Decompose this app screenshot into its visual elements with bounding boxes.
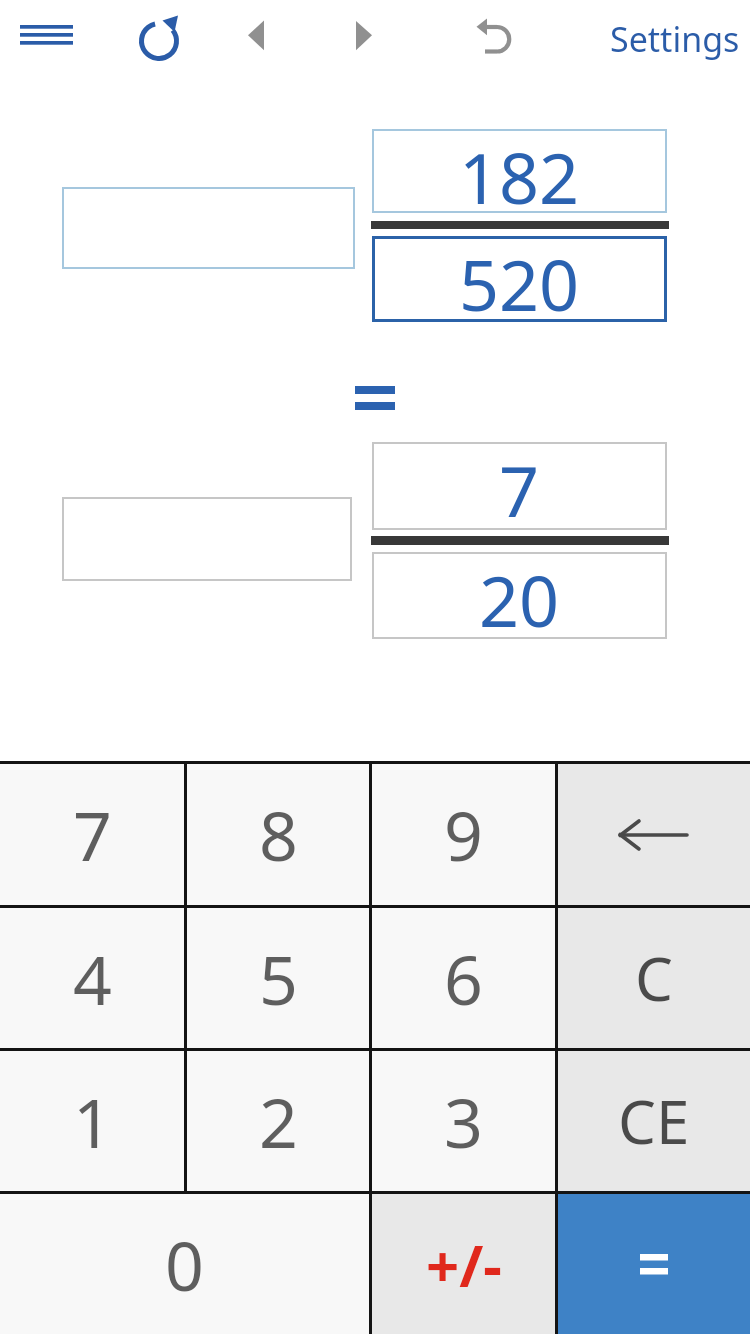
staticText: 1 (73, 1075, 112, 1168)
button[interactable]: 20 (372, 552, 667, 639)
staticText: 0 (165, 1218, 204, 1311)
button[interactable]: 0 (0, 1194, 369, 1334)
button[interactable]: +/- (372, 1194, 555, 1334)
staticText: 9 (444, 788, 483, 881)
staticText: 4 (73, 932, 112, 1025)
button[interactable]: 4 (0, 908, 184, 1048)
button[interactable] (240, 14, 274, 58)
button[interactable]: 9 (372, 764, 555, 905)
staticText: 5 (259, 932, 298, 1025)
staticText: 7 (73, 788, 112, 881)
button[interactable]: CE (558, 1051, 750, 1191)
button[interactable]: 7 (372, 442, 667, 530)
button[interactable]: 1 (0, 1051, 184, 1191)
button[interactable] (62, 187, 355, 269)
staticText: 8 (259, 788, 298, 881)
staticText: +/- (426, 1225, 502, 1304)
button[interactable]: 182 (372, 129, 667, 213)
staticText: 2 (259, 1075, 298, 1168)
button[interactable]: 5 (187, 908, 369, 1048)
staticText: 6 (444, 932, 483, 1025)
staticText: 20 (479, 552, 560, 639)
button[interactable]: 3 (372, 1051, 555, 1191)
button[interactable] (62, 497, 352, 581)
button[interactable]: 520 (372, 236, 667, 322)
button[interactable] (558, 1194, 750, 1334)
button[interactable] (12, 17, 80, 53)
button[interactable] (468, 10, 520, 62)
button[interactable]: 8 (187, 764, 369, 905)
staticText: 7 (499, 442, 540, 530)
button[interactable]: 2 (187, 1051, 369, 1191)
staticText: 3 (444, 1075, 483, 1168)
staticText: C (635, 937, 673, 1019)
button[interactable]: C (558, 908, 750, 1048)
button[interactable]: 6 (372, 908, 555, 1048)
staticText: 520 (459, 236, 580, 322)
button[interactable]: Settings (610, 16, 740, 62)
staticText: CE (618, 1080, 690, 1162)
button[interactable] (348, 14, 382, 58)
button[interactable] (134, 12, 186, 64)
staticText: Settings (610, 16, 740, 62)
staticText: 182 (459, 129, 580, 213)
button[interactable] (558, 764, 750, 905)
button[interactable]: 7 (0, 764, 184, 905)
